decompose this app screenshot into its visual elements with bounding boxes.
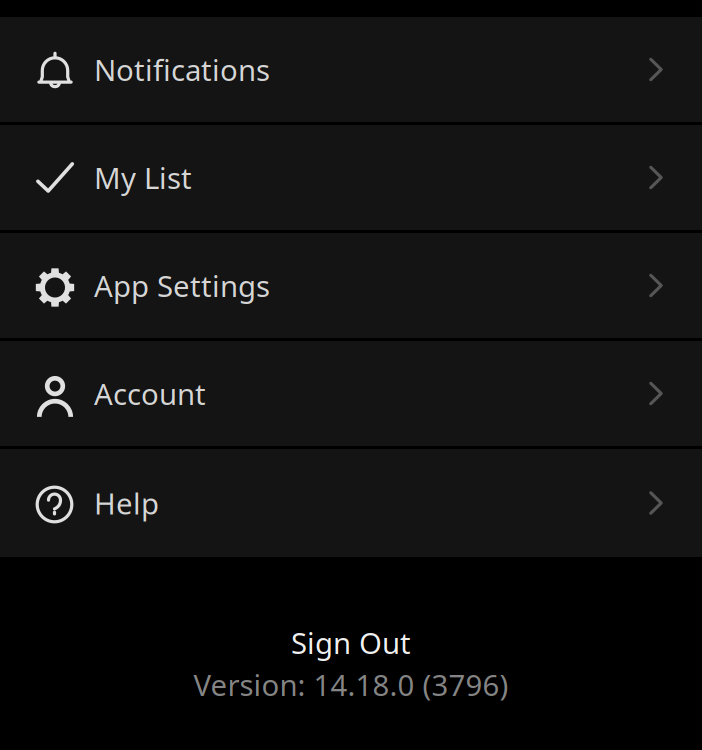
- button[interactable]: Notifications: [0, 17, 702, 125]
- staticText: Help: [94, 483, 159, 522]
- staticText: My List: [94, 158, 192, 197]
- button[interactable]: My List: [0, 125, 702, 233]
- button[interactable]: App Settings: [0, 233, 702, 341]
- staticText: Version: 14.18.0 (3796): [193, 665, 508, 704]
- staticText: Notifications: [94, 50, 270, 89]
- button[interactable]: Help: [0, 449, 702, 557]
- button[interactable]: Sign Out: [291, 623, 411, 662]
- staticText: Account: [94, 374, 206, 413]
- staticText: Sign Out: [291, 623, 411, 662]
- button[interactable]: Account: [0, 341, 702, 449]
- staticText: App Settings: [94, 266, 270, 305]
